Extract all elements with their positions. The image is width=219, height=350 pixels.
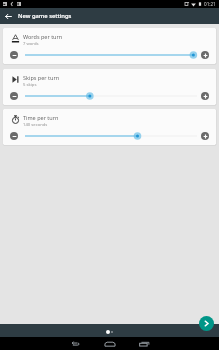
- button[interactable]: Recents: [138, 339, 151, 349]
- button[interactable]: Words per turn: [3, 28, 216, 64]
- button[interactable]: Back: [68, 339, 81, 349]
- button[interactable]: Skips per turn: [3, 69, 216, 105]
- button[interactable]: Decrease: [10, 92, 18, 100]
- button[interactable]: Time per turn: [3, 109, 216, 145]
- button[interactable]: Increase: [201, 51, 209, 59]
- staticText: Time per turn: [23, 114, 59, 121]
- button[interactable]: Next: [199, 316, 214, 331]
- staticText: Skips per turn: [23, 74, 60, 81]
- staticText: 7 words: [23, 41, 39, 47]
- button[interactable]: Decrease: [10, 132, 18, 140]
- button[interactable]: Back: [0, 8, 16, 24]
- button[interactable]: Increase: [201, 92, 209, 100]
- staticText: 5 skips: [23, 82, 37, 88]
- staticText: 140 seconds: [23, 122, 48, 128]
- staticText: Words per turn: [23, 33, 63, 40]
- button[interactable]: Increase: [201, 132, 209, 140]
- button[interactable]: Home: [103, 339, 116, 349]
- staticText: 01:21: [204, 1, 216, 7]
- staticText: New game settings: [18, 12, 72, 20]
- button[interactable]: Decrease: [10, 51, 18, 59]
